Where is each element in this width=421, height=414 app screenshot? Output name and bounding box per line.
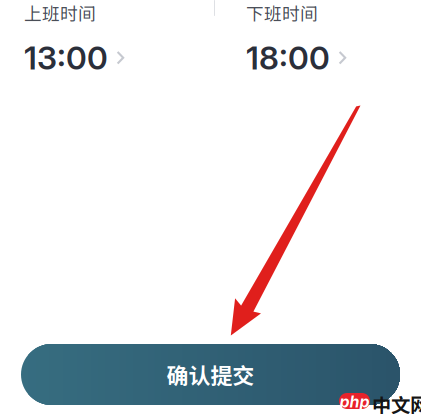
staticText: 上班时间: [24, 0, 96, 25]
staticText: php: [339, 392, 369, 411]
staticText: 18:00: [246, 38, 330, 77]
staticText: 中文网: [372, 390, 421, 414]
staticText: 13:00: [24, 38, 108, 77]
button[interactable]: 上班时间: [24, 0, 164, 77]
button[interactable]: 确认提交: [21, 344, 400, 405]
button[interactable]: 下班时间: [246, 0, 386, 77]
staticText: 下班时间: [246, 0, 318, 25]
staticText: 确认提交: [166, 359, 254, 390]
